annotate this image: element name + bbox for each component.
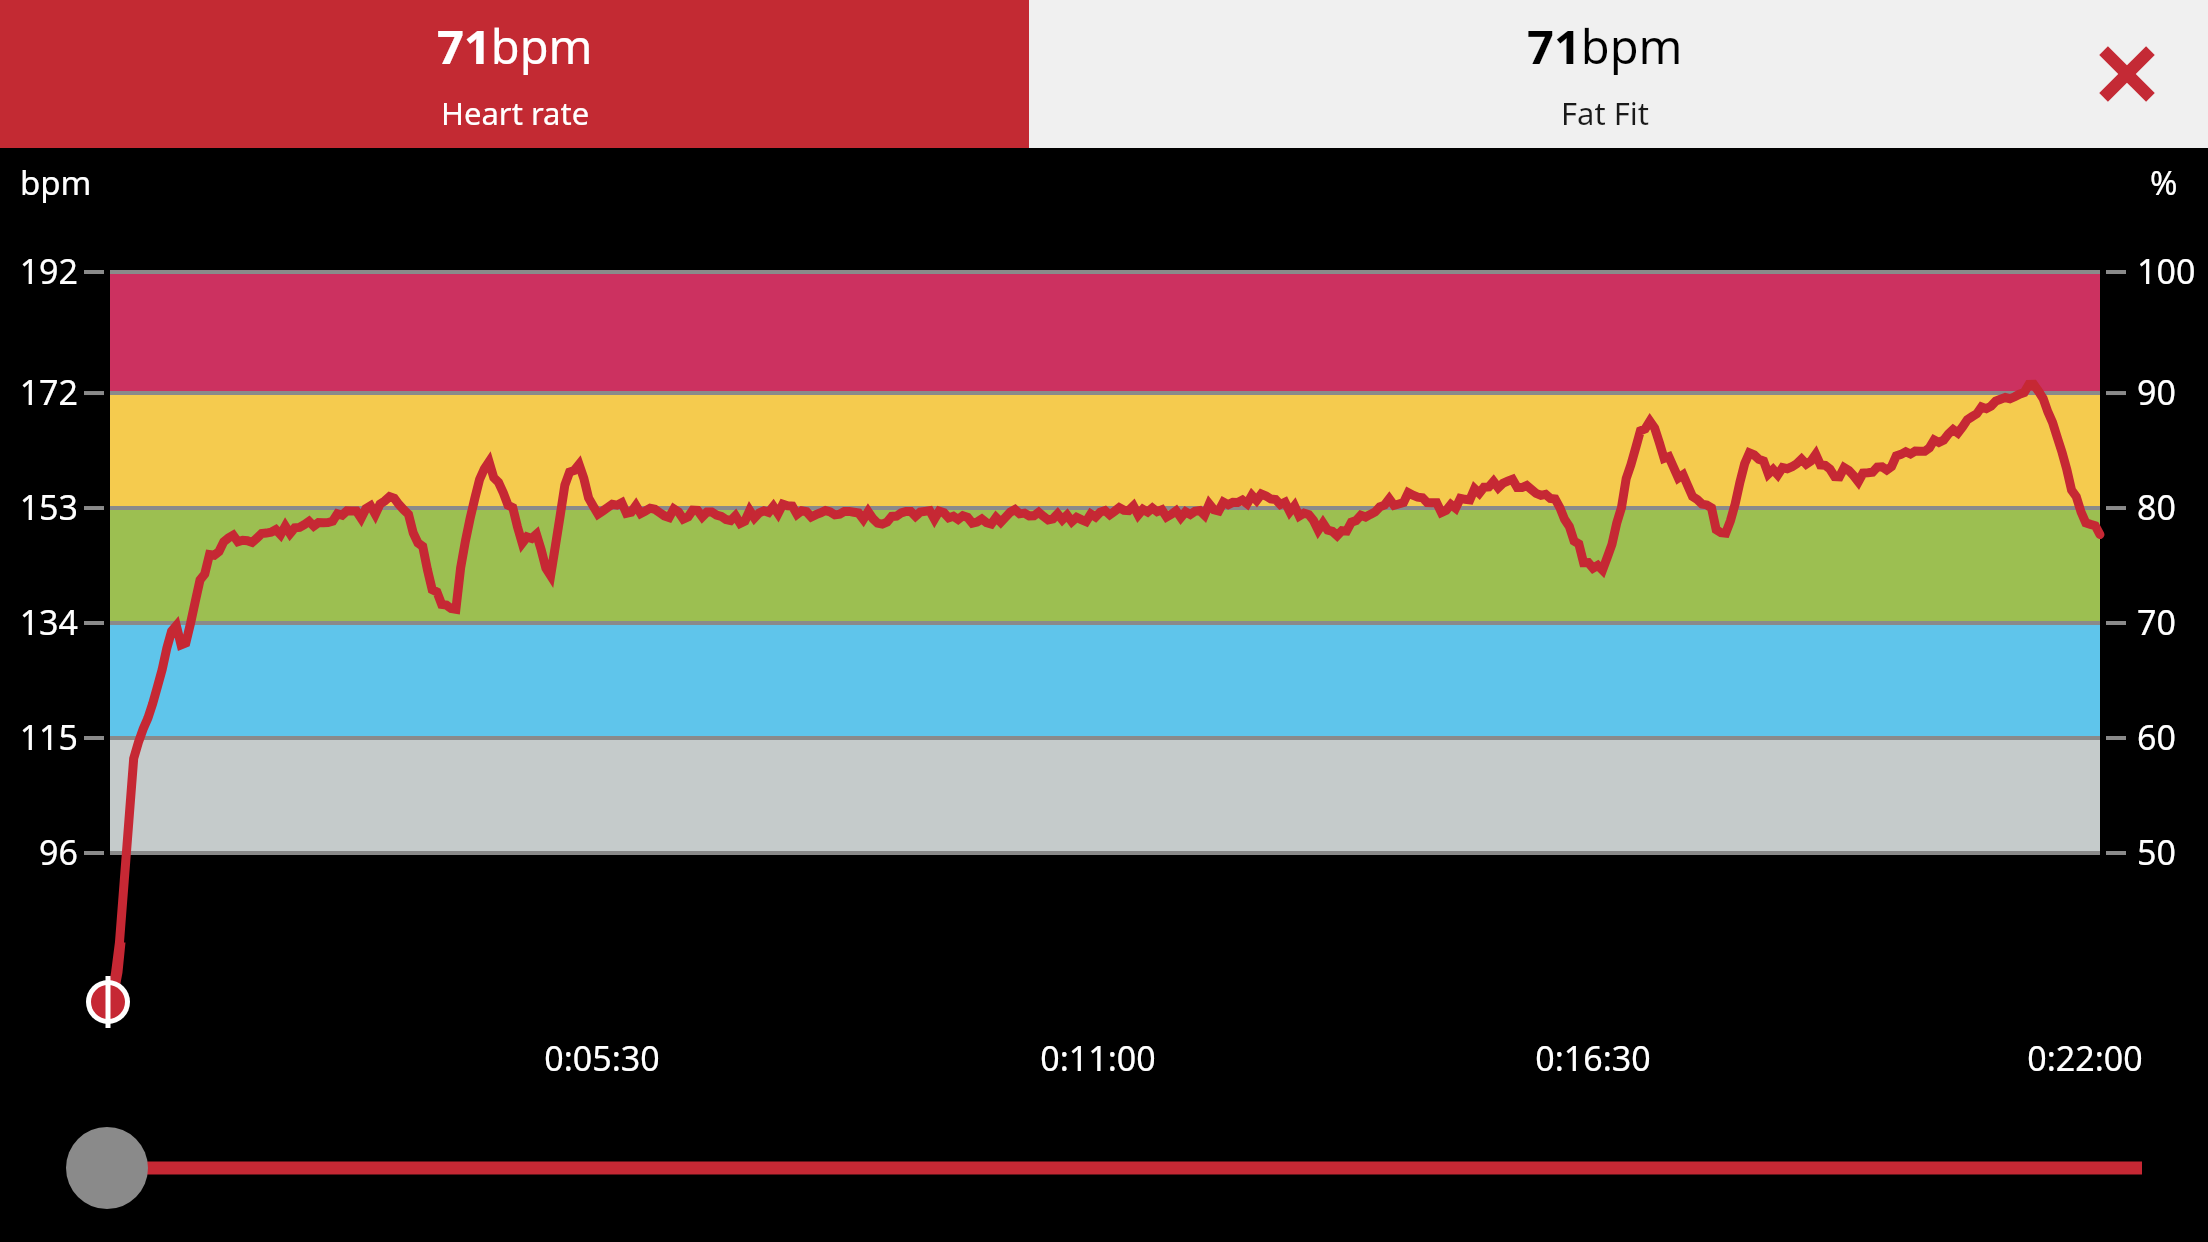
- staticText: 115: [0, 714, 78, 760]
- staticText: 0:22:00: [1935, 1035, 2208, 1081]
- staticText: 71bpm: [1527, 14, 1683, 78]
- staticText: 90: [2137, 369, 2176, 415]
- button[interactable]: Close: [2082, 29, 2172, 119]
- staticText: %: [2150, 160, 2178, 205]
- staticText: Fat Fit: [1561, 92, 1650, 134]
- staticText: 80: [2137, 484, 2176, 530]
- staticText: 172: [0, 369, 78, 415]
- button[interactable]: Scrub timeline: [0, 1120, 2208, 1220]
- staticText: Heart rate: [441, 92, 590, 134]
- button[interactable]: 71bpm: [1029, 0, 2208, 148]
- staticText: 70: [2137, 599, 2176, 645]
- staticText: 192: [0, 248, 78, 294]
- staticText: 0:05:30: [452, 1035, 752, 1081]
- staticText: 134: [0, 599, 78, 645]
- button[interactable]: 71bpm: [0, 0, 1029, 148]
- staticText: 100: [2137, 248, 2196, 294]
- staticText: 60: [2137, 714, 2176, 760]
- staticText: 153: [0, 484, 78, 530]
- staticText: 0:16:30: [1443, 1035, 1743, 1081]
- staticText: bpm: [20, 160, 92, 205]
- staticText: 0:11:00: [948, 1035, 1248, 1081]
- staticText: 71bpm: [437, 14, 593, 78]
- staticText: 96: [0, 829, 78, 875]
- staticText: 50: [2137, 829, 2176, 875]
